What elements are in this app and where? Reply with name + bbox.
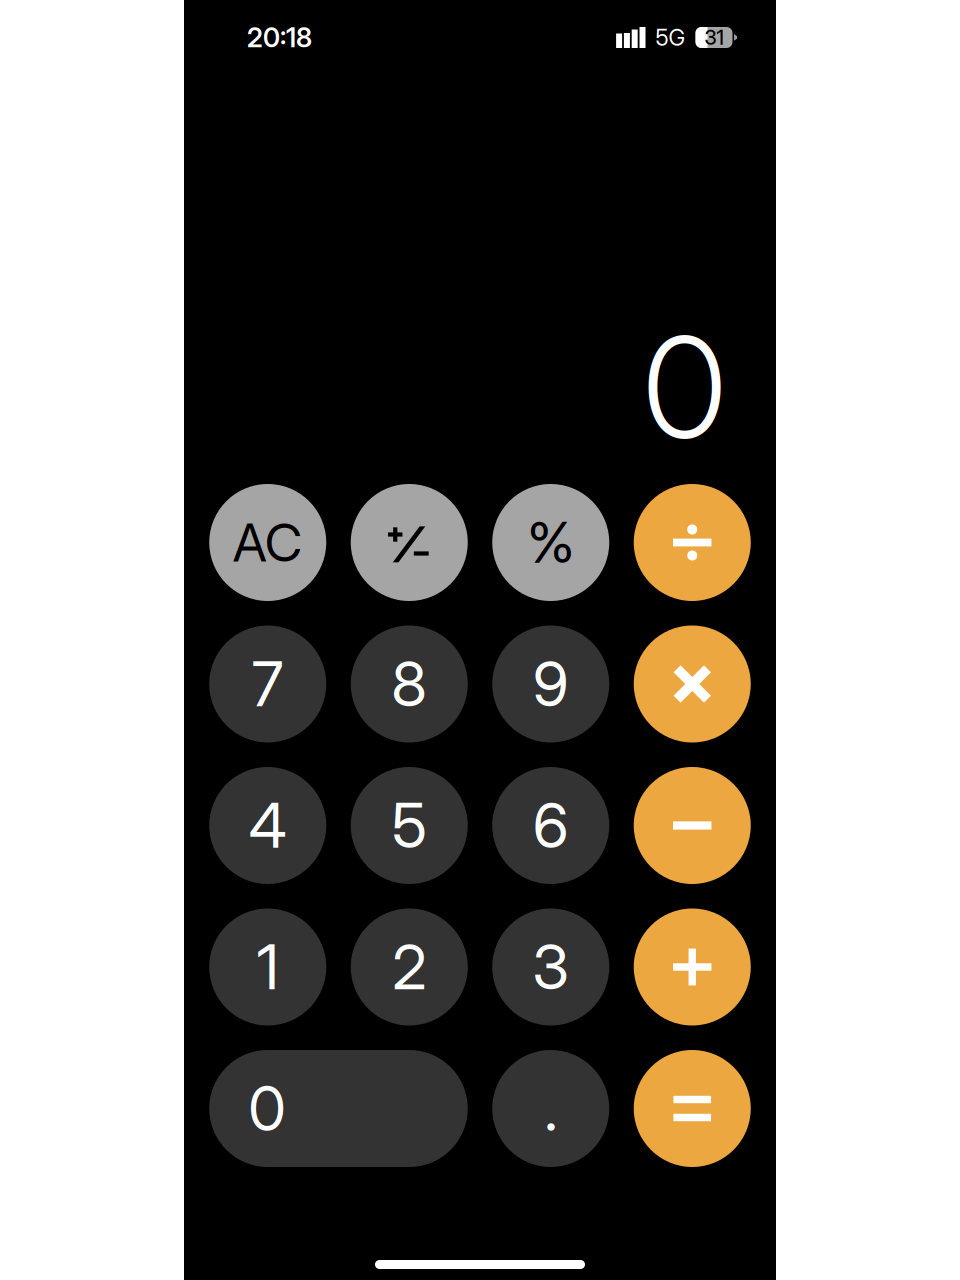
staticText: 6: [533, 788, 569, 863]
staticText: 2: [392, 930, 426, 1004]
button[interactable]: 6: [492, 767, 609, 884]
staticText: 9: [533, 647, 569, 721]
button[interactable]: 0: [209, 1050, 468, 1167]
staticText: 0: [643, 302, 726, 472]
staticText: 7: [252, 647, 284, 721]
staticText: .: [544, 1071, 557, 1146]
button[interactable]: AC: [209, 484, 326, 601]
button[interactable]: 5: [351, 767, 468, 884]
staticText: AC: [233, 511, 303, 574]
button[interactable]: Multiply: [634, 625, 751, 742]
staticText: 0: [248, 1071, 286, 1146]
button[interactable]: 4: [209, 767, 326, 884]
staticText: 20:18: [247, 21, 312, 54]
staticText: 3: [532, 930, 569, 1004]
staticText: 8: [391, 647, 427, 721]
button[interactable]: 9: [492, 625, 609, 742]
button[interactable]: Equals: [634, 1050, 751, 1167]
staticText: %: [527, 509, 574, 576]
staticText: 5G: [655, 24, 685, 51]
staticText: 5: [392, 788, 427, 863]
button[interactable]: 7: [209, 625, 326, 742]
staticText: 31: [704, 25, 723, 50]
button[interactable]: 2: [351, 908, 468, 1025]
button[interactable]: %: [492, 484, 609, 601]
button[interactable]: 8: [351, 625, 468, 742]
button[interactable]: 1: [209, 908, 326, 1025]
button[interactable]: Divide: [634, 484, 751, 601]
button[interactable]: Plus: [634, 908, 751, 1025]
staticText: 1: [257, 930, 279, 1004]
button[interactable]: Plus or minus: [351, 484, 468, 601]
staticText: 4: [249, 788, 287, 863]
button[interactable]: 3: [492, 908, 609, 1025]
button[interactable]: .: [492, 1050, 609, 1167]
button[interactable]: Minus: [634, 767, 751, 884]
